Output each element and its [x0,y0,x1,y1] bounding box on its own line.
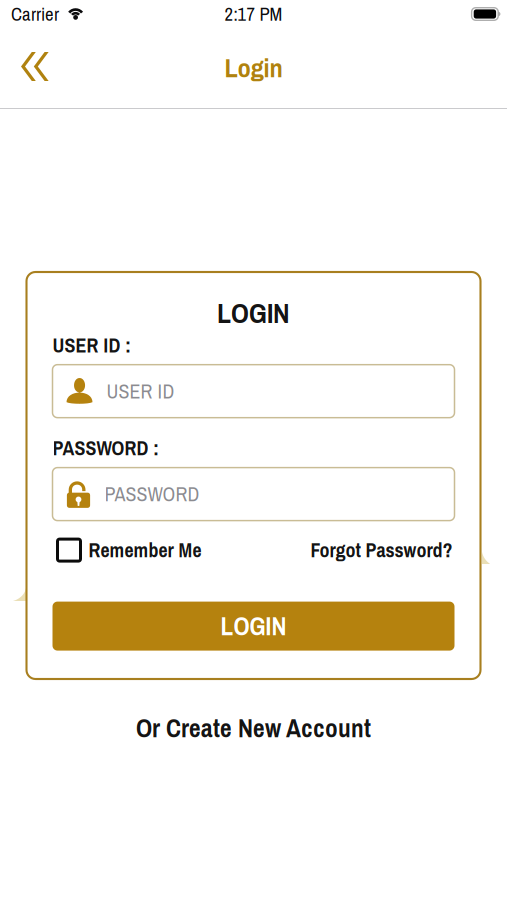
button[interactable]: Remember Me [52,537,201,563]
staticText: Remember Me [88,537,201,563]
staticText: Or Create New Account [136,711,371,745]
staticText: Forgot Password? [310,537,452,563]
staticText: Carrier [11,1,59,26]
staticText: PASSWORD [104,481,199,507]
button[interactable]: Back [0,42,64,95]
staticText: 2:17 PM [224,1,282,26]
staticText: LOGIN [220,609,286,643]
staticText: PASSWORD : [52,435,158,462]
staticText: Login [224,49,282,85]
staticText: LOGIN [217,294,290,332]
button[interactable]: Forgot Password? [310,537,454,563]
staticText: USER ID [106,378,174,405]
staticText: USER ID : [52,332,130,359]
button[interactable]: LOGIN [52,602,454,651]
